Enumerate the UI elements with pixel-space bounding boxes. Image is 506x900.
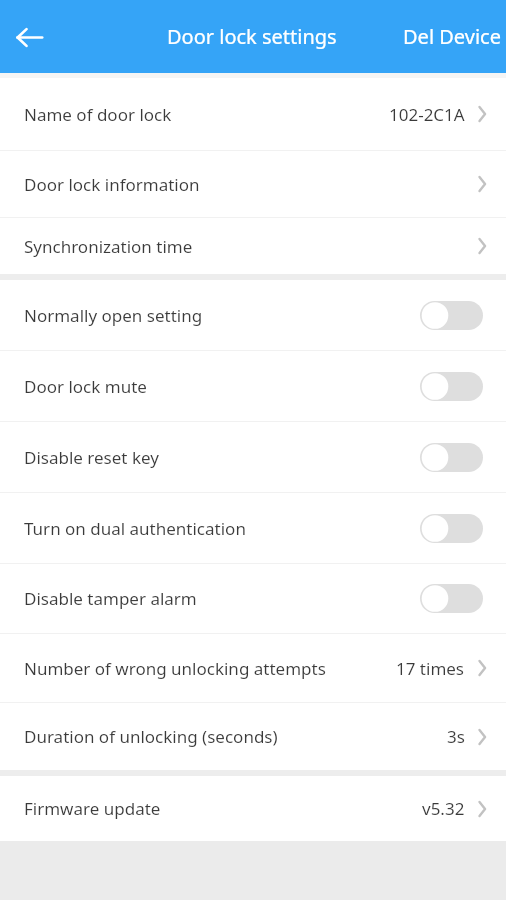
button[interactable]: Door lock mute xyxy=(0,351,506,421)
button[interactable]: Normally open setting xyxy=(0,280,506,350)
staticText: v5.32 xyxy=(422,797,465,820)
button[interactable]: Name of door lock xyxy=(0,78,506,150)
staticText: Turn on dual authentication xyxy=(24,517,246,540)
button[interactable]: Disable reset key xyxy=(0,422,506,492)
staticText: Del Device xyxy=(403,23,501,50)
button[interactable]: Firmware update xyxy=(0,776,506,841)
staticText: 17 times xyxy=(396,657,465,680)
staticText: Number of wrong unlocking attempts xyxy=(24,657,326,680)
button[interactable]: Number of wrong unlocking attempts xyxy=(0,634,506,702)
staticText: Disable tamper alarm xyxy=(24,587,197,610)
staticText: Door lock settings xyxy=(167,23,337,50)
staticText: Synchronization time xyxy=(24,235,193,258)
button[interactable]: Synchronization time xyxy=(0,218,506,274)
button[interactable]: Del Device xyxy=(398,23,506,50)
button[interactable]: Turn on dual authentication xyxy=(0,493,506,563)
staticText: 102-2C1A xyxy=(389,103,465,126)
staticText: 3s xyxy=(447,725,465,748)
button[interactable]: Duration of unlocking (seconds) xyxy=(0,703,506,770)
staticText: Disable reset key xyxy=(24,446,159,469)
staticText: Door lock information xyxy=(24,173,200,196)
staticText: Duration of unlocking (seconds) xyxy=(24,725,278,748)
staticText: Firmware update xyxy=(24,797,161,820)
button[interactable]: Back xyxy=(11,19,47,55)
staticText: Door lock mute xyxy=(24,375,147,398)
button[interactable]: Door lock information xyxy=(0,151,506,217)
staticText: Normally open setting xyxy=(24,304,203,327)
staticText: Name of door lock xyxy=(24,103,172,126)
button[interactable]: Disable tamper alarm xyxy=(0,564,506,633)
